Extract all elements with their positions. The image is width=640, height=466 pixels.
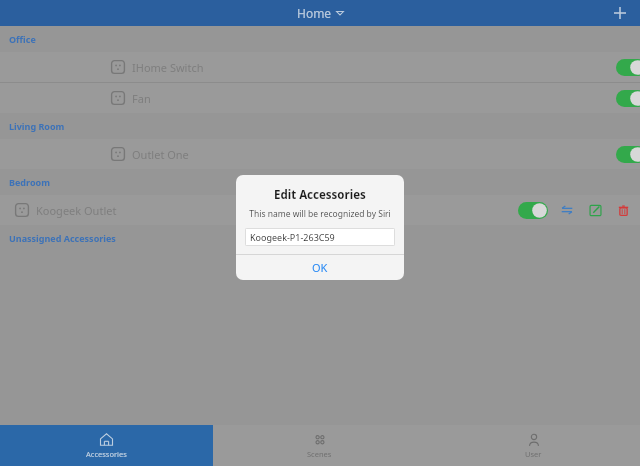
button[interactable]: Koogeek Outlet bbox=[0, 195, 640, 225]
staticText: This name will be recognized by Siri bbox=[249, 208, 391, 220]
staticText: OK bbox=[312, 260, 328, 275]
button[interactable]: Accessories bbox=[0, 425, 213, 466]
staticText: Accessories bbox=[86, 449, 127, 459]
staticText: Unassigned Accessories bbox=[9, 232, 116, 244]
button[interactable]: Koogeek-P1-263C59 bbox=[245, 228, 395, 246]
button[interactable]: Add accessory bbox=[610, 3, 630, 23]
staticText: Koogeek-P1-263C59 bbox=[250, 231, 335, 243]
staticText: Home bbox=[297, 5, 332, 21]
staticText: Office bbox=[9, 33, 36, 45]
staticText: IHome Switch bbox=[132, 60, 204, 75]
button[interactable]: Fan bbox=[0, 83, 640, 113]
button[interactable]: Power toggle bbox=[616, 90, 640, 107]
button[interactable]: Power toggle bbox=[616, 59, 640, 76]
staticText: Living Room bbox=[9, 120, 65, 132]
staticText: Edit Accessories bbox=[274, 187, 366, 203]
staticText: Koogeek Outlet bbox=[36, 203, 117, 218]
staticText: User bbox=[525, 449, 542, 459]
staticText: Outlet One bbox=[132, 147, 189, 162]
button[interactable]: Move accessory bbox=[558, 201, 576, 219]
button[interactable]: Outlet One bbox=[0, 139, 640, 169]
button[interactable]: Delete accessory bbox=[614, 201, 632, 219]
button[interactable]: Power toggle bbox=[616, 146, 640, 163]
button[interactable]: IHome Switch bbox=[0, 52, 640, 82]
button[interactable]: Power toggle bbox=[518, 202, 548, 219]
staticText: Fan bbox=[132, 91, 151, 106]
staticText: Scenes bbox=[307, 449, 332, 459]
button[interactable]: OK bbox=[236, 255, 404, 280]
button[interactable]: Scenes bbox=[213, 425, 426, 466]
button[interactable]: Edit accessory bbox=[586, 201, 604, 219]
staticText: Bedroom bbox=[9, 176, 50, 188]
